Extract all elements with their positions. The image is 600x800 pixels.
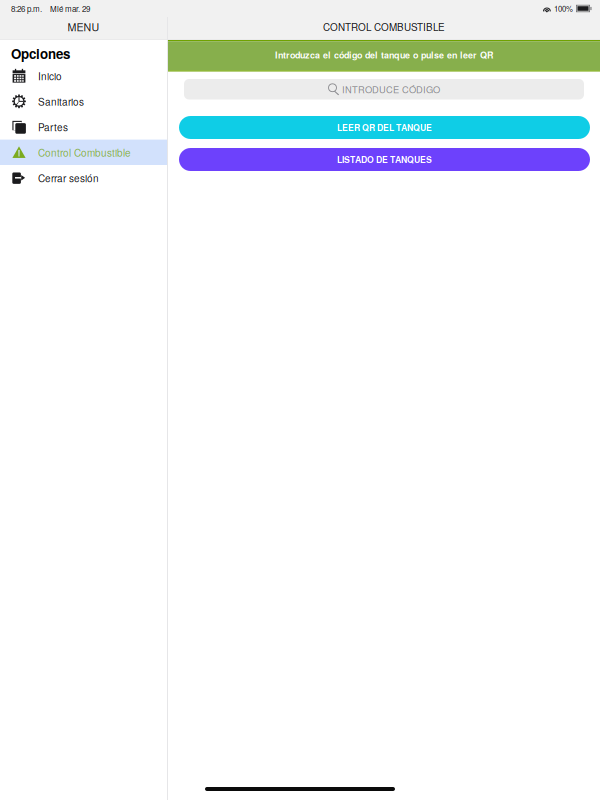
- button[interactable]: Partes: [0, 114, 167, 140]
- staticText: INTRODUCE CÓDIGO: [342, 83, 440, 96]
- staticText: LISTADO DE TANQUES: [337, 153, 432, 166]
- staticText: LEER QR DEL TANQUE: [337, 121, 432, 134]
- staticText: Mié mar. 29: [50, 3, 90, 14]
- staticText: Introduzca el código del tanque o pulse …: [275, 48, 493, 61]
- staticText: Inicio: [38, 69, 62, 83]
- button[interactable]: Inicio: [0, 63, 167, 89]
- staticText: 100%: [554, 3, 573, 14]
- staticText: Opciones: [11, 44, 70, 63]
- staticText: Control Combustible: [38, 145, 131, 159]
- button[interactable]: MENU: [0, 17, 167, 39]
- staticText: 8:26 p.m.: [11, 3, 42, 14]
- staticText: Cerrar sesión: [38, 171, 99, 185]
- staticText: MENU: [67, 19, 99, 34]
- staticText: Partes: [38, 120, 68, 134]
- button[interactable]: Cerrar sesión: [0, 165, 167, 191]
- staticText: CONTROL COMBUSTIBLE: [323, 20, 445, 34]
- button[interactable]: LEER QR DEL TANQUE: [179, 116, 590, 139]
- button[interactable]: Control Combustible: [0, 140, 167, 165]
- button[interactable]: LISTADO DE TANQUES: [179, 148, 590, 171]
- staticText: Sanitarios: [38, 94, 84, 108]
- button[interactable]: Sanitarios: [0, 89, 167, 114]
- button[interactable]: INTRODUCE CÓDIGO: [184, 79, 584, 99]
